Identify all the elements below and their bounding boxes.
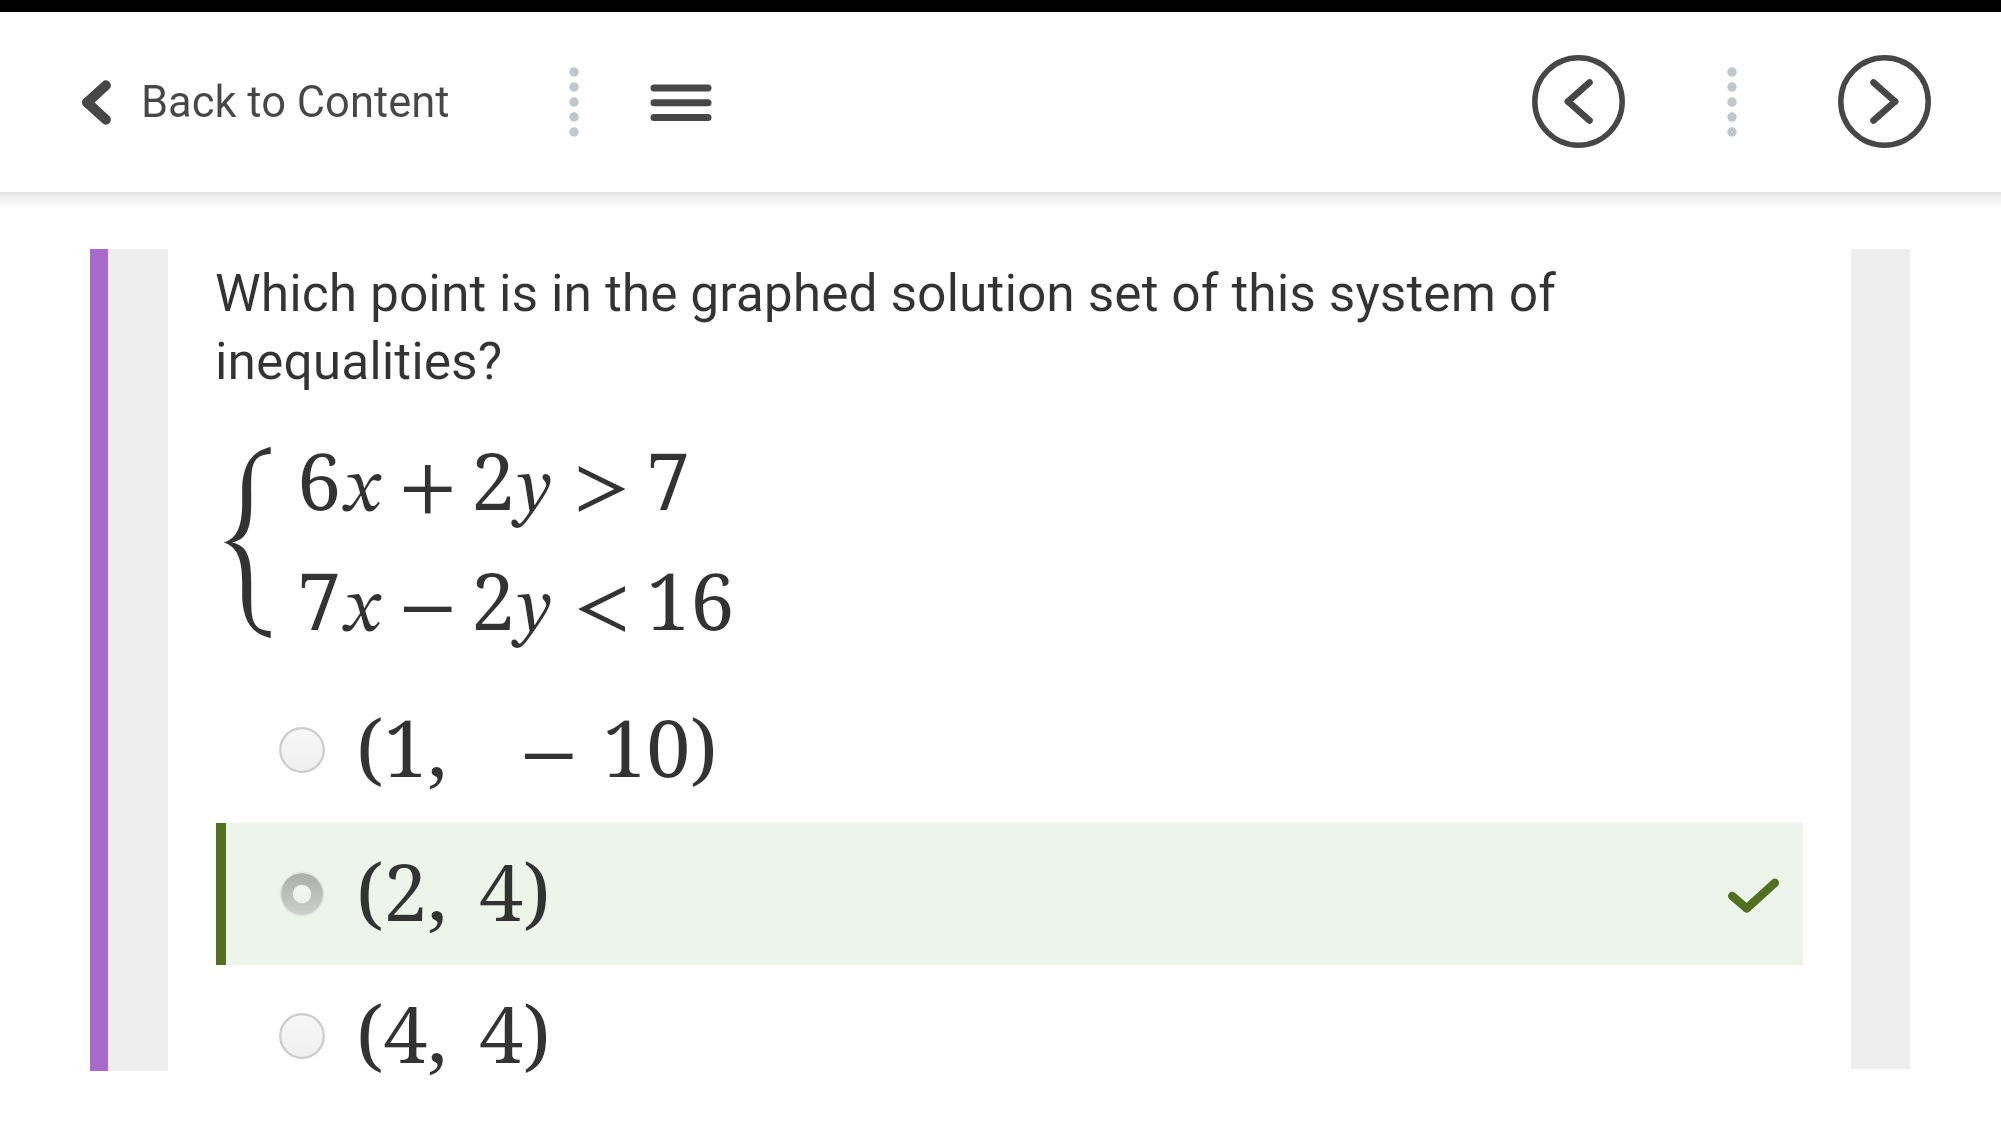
button[interactable]: Menu [636, 62, 726, 142]
staticText: 2 [471, 546, 516, 654]
button[interactable]: Back to Content [69, 63, 464, 142]
staticText: Which point is in the graphed solution s… [215, 263, 1557, 391]
staticText: > [573, 449, 631, 529]
button[interactable]: (2, [216, 823, 1803, 965]
staticText: 4) [479, 837, 551, 945]
staticText: 7 [297, 546, 342, 654]
staticText: x [345, 573, 380, 649]
staticText: (2, [356, 837, 448, 945]
staticText: − [399, 569, 457, 649]
staticText: 6 [297, 426, 342, 534]
staticText: + [399, 449, 457, 529]
staticText: 2 [471, 426, 516, 534]
staticText: y [517, 453, 551, 529]
staticText: < [573, 569, 631, 649]
button[interactable]: Previous [1532, 55, 1625, 148]
button[interactable]: (4, [216, 965, 1803, 1107]
button[interactable]: (1, [216, 679, 1803, 821]
staticText: Back to Content [141, 77, 450, 128]
staticText: 10) [602, 693, 718, 801]
staticText: 7 [646, 426, 691, 534]
staticText: y [517, 573, 551, 649]
staticText: x [345, 453, 380, 529]
staticText: (4, [356, 979, 448, 1087]
staticText: 4) [479, 979, 551, 1087]
staticText: (1, [356, 693, 448, 801]
staticText: 16 [646, 546, 735, 654]
staticText: − [520, 716, 578, 796]
button[interactable]: Next [1838, 55, 1931, 148]
